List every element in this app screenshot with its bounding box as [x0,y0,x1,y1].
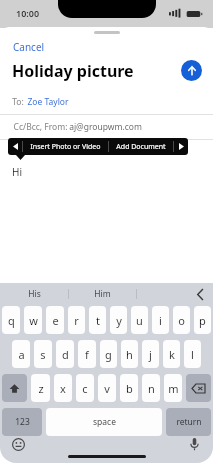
button[interactable]: His [0,283,68,305]
staticText: f [85,347,89,362]
staticText: His [28,288,41,300]
staticText: d [62,347,69,362]
button[interactable]: t [89,306,106,334]
button[interactable]: Shift [2,374,27,402]
staticText: w [29,313,38,328]
staticText: Add Document [116,142,166,152]
staticText: return [176,416,202,428]
staticText: m [168,381,179,396]
button[interactable]: k [163,340,180,368]
button[interactable]: a [12,340,30,368]
button[interactable]: c [76,374,94,402]
staticText: o [178,313,185,328]
staticText: n [148,381,155,396]
staticText: p [199,313,206,328]
staticText: i [159,313,162,328]
staticText: l [191,347,194,362]
button[interactable]: Previous [8,138,22,155]
button[interactable]: Send [181,60,202,81]
button[interactable]: j [142,340,159,368]
button[interactable]: return [166,408,211,436]
button[interactable]: p [194,306,211,334]
button[interactable]: Add Document [109,138,173,155]
button[interactable]: To: [0,90,213,114]
staticText: k [169,347,175,362]
button[interactable]: Insert Photo or Video [23,138,108,155]
staticText: Cc/Bcc, From: [12,121,69,133]
staticText: c [82,381,88,396]
button[interactable]: h [121,340,138,368]
staticText: Him [94,288,111,300]
button[interactable]: y [110,306,127,334]
button[interactable]: l [184,340,201,368]
button[interactable]: q [2,306,20,334]
button[interactable]: x [54,374,72,402]
staticText: 10:00 [16,7,40,19]
staticText: space [93,416,116,428]
button[interactable]: f [78,340,96,368]
staticText: s [40,347,46,362]
button[interactable]: i [152,306,169,334]
staticText: x [60,381,66,396]
staticText: q [8,313,15,328]
staticText: v [104,381,110,396]
button[interactable]: Cc/Bcc, From: [0,115,213,139]
button[interactable]: v [98,374,116,402]
button[interactable]: Collapse suggestions [187,283,213,305]
button[interactable]: s [34,340,52,368]
staticText: g [105,347,112,362]
button[interactable]: d [56,340,74,368]
staticText: Cancel [13,40,45,54]
staticText: b [126,381,133,396]
staticText: 123 [15,416,30,428]
staticText: y [116,313,122,328]
button[interactable]: 123 [2,408,42,436]
button[interactable]: b [120,374,138,402]
staticText: j [149,347,152,362]
staticText: To: [12,96,24,108]
button[interactable]: r [68,306,85,334]
staticText: e [52,313,59,328]
button[interactable]: n [142,374,160,402]
button[interactable]: m [164,374,182,402]
button[interactable]: Emoji [8,434,28,454]
staticText: Zoe Taylor [27,96,69,108]
button[interactable]: z [31,374,50,402]
staticText: Insert Photo or Video [30,142,101,152]
button[interactable]: Dictate [184,434,204,454]
button[interactable]: Next [174,138,188,155]
staticText: z [38,381,44,396]
staticText: Holiday picture [12,60,134,82]
button[interactable]: Cancel [10,38,48,56]
button[interactable]: u [131,306,148,334]
staticText: Hi [12,165,22,179]
staticText: a [18,347,25,362]
button[interactable]: w [24,306,42,334]
button[interactable]: Him [69,283,136,305]
button[interactable]: o [173,306,190,334]
button[interactable]: space [46,408,162,436]
button[interactable]: e [46,306,64,334]
staticText: aj@groupwm.com [69,121,142,133]
staticText: u [136,313,143,328]
button[interactable]: Delete [186,374,211,402]
button[interactable]: g [100,340,117,368]
staticText: h [126,347,133,362]
staticText: r [74,313,79,328]
staticText: t [96,313,100,328]
